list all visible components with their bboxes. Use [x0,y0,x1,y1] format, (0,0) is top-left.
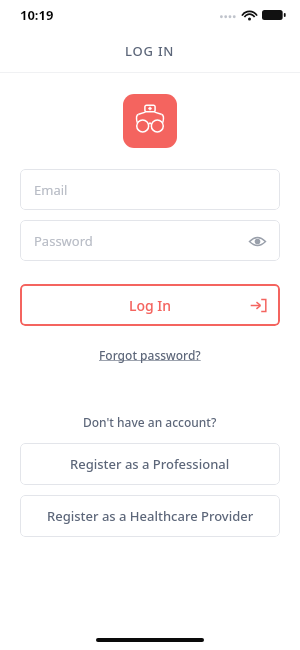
button[interactable]: Log In [20,284,280,326]
staticText: Don't have an account? [83,414,217,430]
button[interactable]: Show password [245,229,269,253]
staticText: Password [34,232,93,250]
button[interactable]: Forgot password? [91,344,209,366]
button[interactable]: Register as a Professional [20,443,280,485]
button[interactable]: Register as a Healthcare Provider [20,495,280,537]
staticText: Log In [129,296,172,315]
staticText: LOG IN [125,42,175,60]
staticText: Forgot password? [99,347,201,363]
staticText: Register as a Healthcare Provider [47,507,254,525]
button[interactable]: Password [20,220,280,261]
staticText: Register as a Professional [70,455,230,473]
staticText: Email [34,181,68,199]
button[interactable]: Email [20,169,280,210]
staticText: 10:19 [20,6,54,24]
